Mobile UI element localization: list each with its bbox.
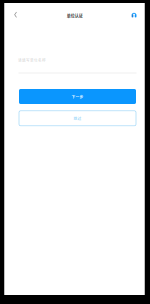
button[interactable]: 跳过	[19, 111, 136, 126]
button[interactable]: 请填写单位名称	[19, 49, 136, 71]
button[interactable]: 下一步	[19, 89, 136, 104]
button[interactable]: Customer service	[127, 7, 140, 22]
staticText: 跳过	[73, 116, 81, 121]
staticText: 下一步	[71, 94, 83, 99]
staticText: 请填写单位名称	[18, 57, 46, 63]
button[interactable]: Back	[9, 7, 22, 22]
staticText: 单位认证	[67, 13, 83, 19]
